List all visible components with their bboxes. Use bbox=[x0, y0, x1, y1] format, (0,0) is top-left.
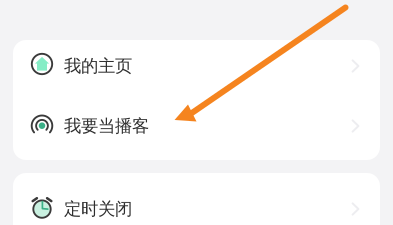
button[interactable]: 我的主页 bbox=[13, 40, 380, 100]
staticText: 我的主页 bbox=[64, 55, 132, 77]
button[interactable]: 定时关闭 bbox=[13, 173, 380, 225]
staticText: 定时关闭 bbox=[64, 198, 132, 220]
button[interactable]: 我要当播客 bbox=[13, 100, 380, 160]
staticText: 我要当播客 bbox=[64, 115, 149, 137]
